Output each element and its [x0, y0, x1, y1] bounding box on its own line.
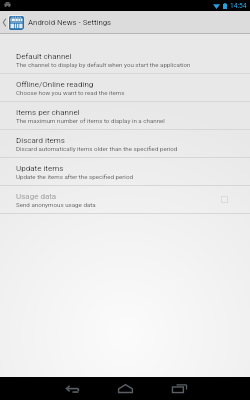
button[interactable]: Back [59, 377, 85, 400]
button[interactable]: Update items [0, 158, 250, 185]
button[interactable]: Recent apps [166, 377, 192, 400]
button[interactable]: Items per channel [0, 102, 250, 129]
button[interactable]: Offline/Online reading [0, 74, 250, 101]
staticText: Usage data [16, 192, 57, 201]
staticText: The maximum number of items to display i… [16, 117, 165, 124]
staticText: The channel to display by default when y… [16, 61, 191, 68]
staticText: Update items [16, 164, 64, 173]
staticText: Discard automatically items older than t… [16, 145, 178, 152]
staticText: Default channel [16, 52, 72, 61]
button[interactable]: Navigate up [0, 11, 8, 33]
staticText: Discard items [16, 136, 65, 145]
button[interactable]: Discard items [0, 130, 250, 157]
staticText: Items per channel [16, 108, 80, 117]
staticText: Update the items after the specified per… [16, 173, 133, 180]
button[interactable]: Default channel [0, 46, 250, 73]
staticText: Choose how you want to read the items [16, 89, 125, 96]
staticText: Offline/Online reading [16, 80, 94, 89]
button[interactable]: Home [112, 377, 138, 400]
staticText: Send anonymous usage data [16, 201, 96, 208]
staticText: 14:54 [230, 2, 247, 10]
button[interactable]: Usage data [0, 186, 250, 213]
staticText: Android News - Settings [28, 18, 112, 27]
